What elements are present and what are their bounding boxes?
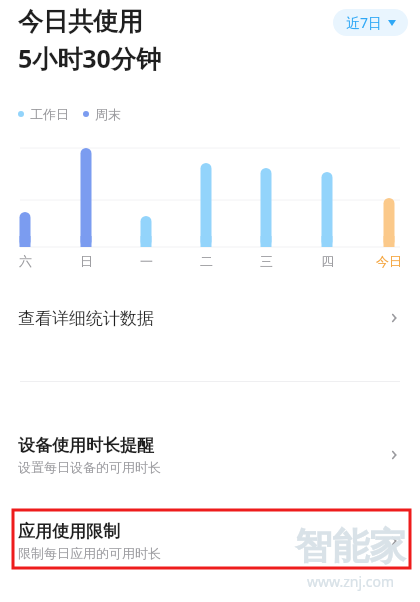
staticText: 一 — [140, 253, 153, 269]
button[interactable]: 查看详细统计数据 — [0, 292, 420, 344]
staticText: 日 — [80, 253, 93, 269]
staticText: 今日共使用 — [18, 6, 143, 37]
other: Open — [386, 447, 402, 463]
other: Open — [386, 310, 402, 326]
staticText: 智能家 — [295, 523, 406, 570]
staticText: 今日 — [376, 253, 402, 269]
staticText: 近7日 — [346, 13, 383, 32]
staticText: 周末 — [95, 106, 121, 122]
staticText: 设备使用时长提醒 — [18, 435, 154, 456]
staticText: 设置每日设备的可用时长 — [18, 459, 161, 475]
staticText: 六 — [19, 253, 32, 269]
staticText: 二 — [200, 253, 213, 269]
staticText: 查看详细统计数据 — [18, 308, 154, 329]
staticText: 限制每日应用的可用时长 — [18, 545, 161, 561]
staticText: 5小时30分钟 — [18, 41, 161, 75]
button[interactable]: 设备使用时长提醒 — [0, 424, 420, 486]
button[interactable]: 近7日 — [333, 9, 408, 36]
staticText: 工作日 — [30, 106, 69, 122]
staticText: 应用使用限制 — [18, 521, 120, 542]
staticText: 三 — [260, 253, 273, 269]
staticText: www.znj.com — [307, 572, 395, 591]
other: Open — [386, 533, 402, 549]
staticText: 四 — [321, 253, 334, 269]
button[interactable]: 应用使用限制 — [0, 512, 420, 570]
